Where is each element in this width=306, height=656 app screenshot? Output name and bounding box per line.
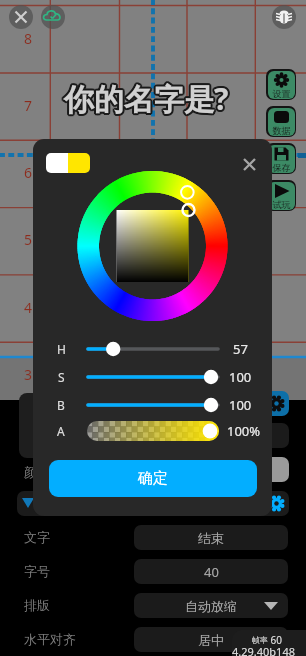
staticText: 设置 — [268, 88, 295, 98]
staticText: 你的名字是? — [64, 80, 229, 121]
button[interactable]: 设置 — [266, 69, 296, 100]
button[interactable]: 居中 — [134, 627, 288, 652]
button[interactable] — [87, 421, 219, 441]
button[interactable] — [19, 393, 99, 458]
staticText: 你的名字是? — [63, 80, 228, 121]
button[interactable] — [17, 491, 77, 516]
staticText: 排版 — [24, 597, 50, 613]
staticText: 你的名字是? — [65, 77, 230, 118]
staticText: 结束 — [198, 530, 224, 546]
staticText: 文字 — [24, 529, 50, 545]
staticText: 你的名字是? — [63, 79, 228, 120]
staticText: 你的名字是? — [65, 79, 230, 120]
button[interactable]: 结束 — [134, 525, 288, 550]
staticText: 居中 — [198, 632, 224, 648]
staticText: 你的名字是? — [64, 76, 229, 117]
button[interactable]: 自动放缩 — [134, 593, 288, 618]
button[interactable]: 数据 — [266, 106, 296, 137]
button[interactable] — [83, 394, 223, 416]
staticText: 5 — [24, 230, 33, 248]
staticText: 你的名字是? — [64, 78, 229, 119]
staticText: H — [57, 341, 66, 357]
staticText: 你的名字是? — [64, 79, 229, 120]
button[interactable]: Debug — [272, 5, 296, 29]
staticText: 7 — [24, 96, 33, 114]
staticText: 试玩 — [268, 199, 295, 209]
staticText: 自动放缩 — [185, 598, 237, 614]
button[interactable] — [83, 338, 223, 360]
staticText: 你的名字是? — [64, 77, 229, 118]
staticText: 你的名字是? — [63, 78, 228, 119]
staticText: 确定 — [138, 469, 168, 488]
staticText: 你的名字是? — [62, 77, 227, 118]
staticText: 你的名字是? — [66, 78, 231, 119]
staticText: 你的名字是? — [63, 77, 228, 118]
button[interactable] — [83, 366, 223, 388]
button[interactable]: 保存 — [266, 143, 296, 174]
staticText: 你的名字是? — [63, 76, 228, 117]
staticText: 4 — [24, 298, 33, 316]
staticText: 你的名字是? — [64, 78, 229, 119]
staticText: 3 — [24, 365, 33, 383]
staticText: 57 — [233, 340, 248, 358]
button[interactable] — [46, 153, 90, 173]
staticText: 你的名字是? — [62, 79, 227, 120]
staticText: 帧率 — [252, 635, 268, 645]
staticText: 水平对齐 — [24, 631, 76, 647]
button[interactable]: Close — [236, 151, 262, 177]
staticText: S — [58, 369, 65, 385]
staticText: 8 — [24, 29, 33, 47]
staticText: 你的名字是? — [65, 80, 230, 121]
staticText: 你的名字是? — [65, 76, 230, 117]
staticText: 60 — [268, 633, 283, 647]
staticText: 颜色 — [24, 464, 50, 480]
button[interactable]: 确定 — [49, 460, 257, 497]
staticText: 40 — [204, 563, 219, 581]
button[interactable] — [134, 391, 289, 416]
button[interactable] — [134, 491, 289, 516]
staticText: 你的名字是? — [62, 78, 227, 119]
button[interactable]: Cloud save — [41, 5, 65, 29]
staticText: 6 — [24, 163, 33, 181]
button[interactable] — [134, 457, 289, 482]
button[interactable] — [134, 423, 289, 448]
staticText: B — [57, 397, 65, 413]
staticText: 100% — [227, 422, 261, 440]
staticText: A — [57, 423, 65, 439]
staticText: 你的名字是? — [65, 78, 230, 119]
staticText: 你的名字是? — [66, 79, 231, 120]
staticText: 字号 — [24, 563, 50, 579]
staticText: 数据 — [268, 125, 295, 135]
button[interactable]: 试玩 — [266, 180, 296, 211]
staticText: 4.29.40b148 — [232, 644, 295, 656]
staticText: 保存 — [268, 162, 295, 172]
button[interactable]: 40 — [134, 559, 288, 584]
staticText: 100 — [229, 396, 252, 414]
staticText: 100 — [229, 368, 252, 386]
button[interactable]: Close — [9, 5, 33, 29]
staticText: 你的名字是? — [66, 77, 231, 118]
